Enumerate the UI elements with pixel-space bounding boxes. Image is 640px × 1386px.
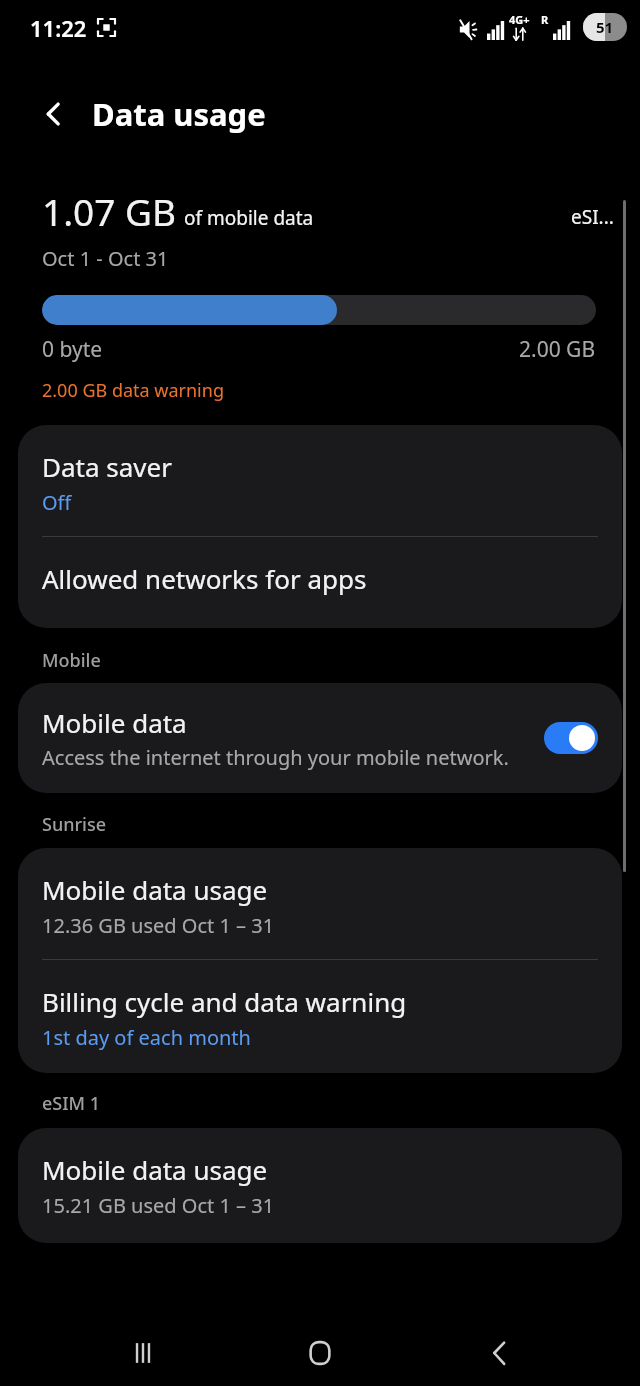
staticText: 15.21 GB used Oct 1 – 31 bbox=[42, 1192, 275, 1219]
staticText: 0 byte bbox=[42, 335, 103, 364]
staticText: Mobile data usage bbox=[42, 872, 268, 907]
staticText: 4G+ bbox=[509, 12, 530, 27]
button[interactable]: Mobile data usage bbox=[18, 1128, 622, 1243]
button[interactable]: Mobile data usage bbox=[18, 848, 622, 959]
button[interactable]: Back bbox=[460, 1320, 540, 1386]
staticText: Oct 1 - Oct 31 bbox=[42, 245, 169, 272]
staticText: Access the internet through your mobile … bbox=[42, 744, 509, 771]
button[interactable]: Data saver bbox=[18, 425, 622, 536]
staticText: Sunrise bbox=[42, 812, 107, 837]
staticText: eSI... bbox=[571, 204, 614, 230]
staticText: Allowed networks for apps bbox=[42, 561, 367, 596]
staticText: 51 bbox=[596, 17, 614, 37]
staticText: eSIM 1 bbox=[42, 1091, 101, 1116]
staticText: Mobile bbox=[42, 648, 101, 673]
staticText: 1st day of each month bbox=[42, 1024, 251, 1051]
button[interactable]: Mobile data bbox=[18, 683, 622, 793]
staticText: R bbox=[541, 12, 549, 27]
button[interactable]: Back bbox=[26, 86, 82, 142]
staticText: Mobile data usage bbox=[42, 1152, 268, 1187]
button[interactable]: Mobile data, on bbox=[544, 722, 598, 754]
staticText: of mobile data bbox=[184, 205, 314, 231]
button[interactable]: Recent apps bbox=[103, 1320, 183, 1386]
staticText: 12.36 GB used Oct 1 – 31 bbox=[42, 912, 275, 939]
button[interactable]: Billing cycle and data warning bbox=[18, 960, 622, 1073]
staticText: Billing cycle and data warning bbox=[42, 984, 407, 1019]
staticText: Data usage bbox=[92, 93, 266, 135]
button[interactable]: Home bbox=[280, 1320, 360, 1386]
staticText: Off bbox=[42, 489, 72, 516]
staticText: 2.00 GB data warning bbox=[42, 378, 224, 403]
button[interactable]: Allowed networks for apps bbox=[18, 537, 622, 628]
staticText: 11:22 bbox=[30, 13, 87, 43]
staticText: Data saver bbox=[42, 449, 172, 484]
staticText: 2.00 GB bbox=[519, 335, 596, 364]
staticText: Mobile data bbox=[42, 705, 187, 740]
staticText: 1.07 GB bbox=[42, 186, 177, 236]
